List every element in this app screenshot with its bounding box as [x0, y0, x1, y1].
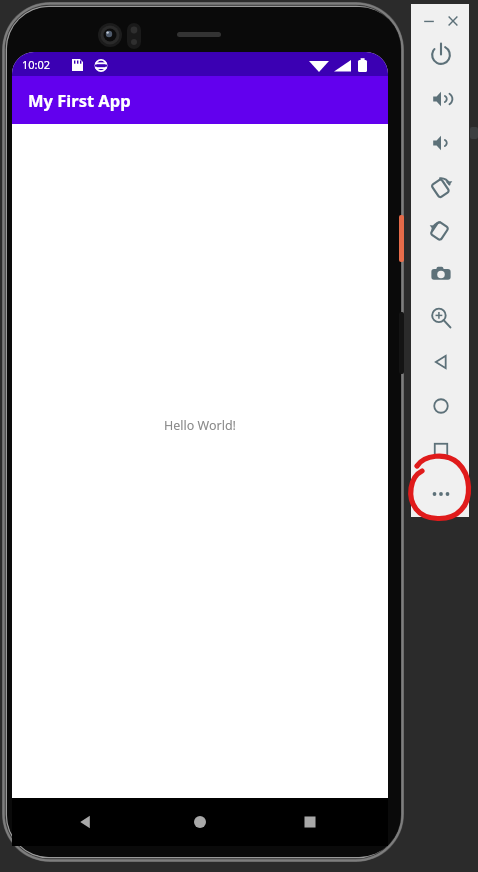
- staticText: Hello World!: [164, 417, 236, 434]
- button[interactable]: Home: [188, 810, 212, 834]
- button[interactable]: Zoom: [428, 305, 454, 331]
- button[interactable]: Minimize: [418, 10, 440, 32]
- button[interactable]: Back: [428, 349, 454, 375]
- button[interactable]: Take screenshot: [428, 261, 454, 287]
- button[interactable]: Recent apps: [298, 810, 322, 834]
- button[interactable]: Rotate left: [428, 174, 454, 200]
- button[interactable]: Volume down: [428, 130, 454, 156]
- button[interactable]: Back: [74, 810, 98, 834]
- button[interactable]: Home: [428, 393, 454, 419]
- button[interactable]: Rotate right: [428, 218, 454, 244]
- button[interactable]: Power: [428, 42, 454, 68]
- staticText: 10:02: [22, 57, 51, 72]
- button[interactable]: More: [428, 481, 454, 507]
- button[interactable]: Overview: [428, 437, 454, 463]
- button[interactable]: Close: [442, 10, 464, 32]
- button[interactable]: Volume up: [428, 86, 454, 112]
- staticText: My First App: [28, 89, 131, 111]
